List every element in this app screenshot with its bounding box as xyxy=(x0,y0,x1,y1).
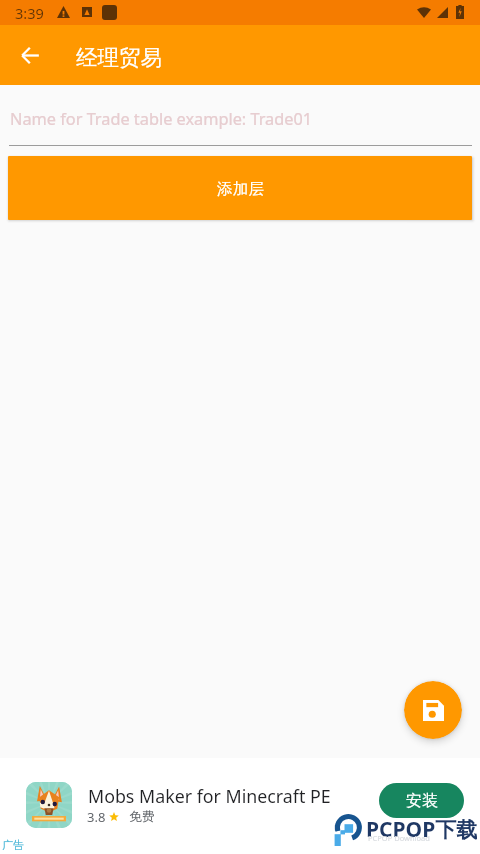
button[interactable]: Mobs Maker for Minecraft PE xyxy=(0,758,480,854)
button[interactable]: 添加层 xyxy=(8,156,472,220)
staticText: 添加层 xyxy=(217,179,264,199)
button[interactable]: 安装 xyxy=(379,783,464,818)
staticText: Mobs Maker for Minecraft PE xyxy=(88,784,331,808)
staticText: 3:39 xyxy=(15,3,44,23)
button[interactable]: Save xyxy=(404,681,462,739)
button[interactable]: Trade table name input xyxy=(9,96,472,146)
staticText: PCPOP下载 xyxy=(366,815,478,844)
staticText: 广告 xyxy=(2,838,24,852)
staticText: PCPOP Download xyxy=(368,833,430,843)
staticText: 3.8 xyxy=(87,808,106,826)
staticText: 安装 xyxy=(406,791,438,811)
staticText: Name for Trade table example: Trade01 xyxy=(10,108,313,130)
staticText: 免费 xyxy=(129,808,155,824)
staticText: 经理贸易 xyxy=(76,44,162,71)
button[interactable]: Back xyxy=(13,38,47,72)
